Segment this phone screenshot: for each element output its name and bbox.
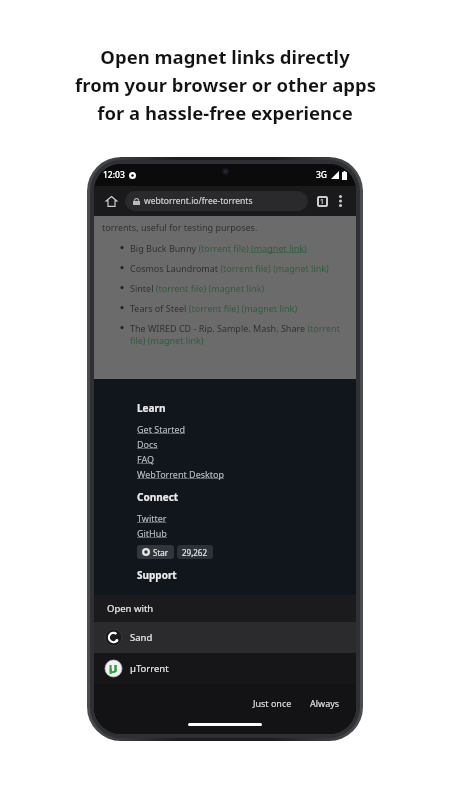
staticText: Just once bbox=[253, 697, 292, 709]
button[interactable]: Docs bbox=[137, 438, 158, 450]
staticText: webtorrent.io/free-torrents bbox=[144, 195, 253, 207]
staticText: Get Started bbox=[137, 423, 186, 435]
staticText: FAQ bbox=[137, 453, 155, 465]
button[interactable]: WebTorrent Desktop bbox=[137, 468, 225, 480]
button[interactable]: More options bbox=[331, 192, 349, 210]
button[interactable]: Get Started bbox=[137, 423, 186, 435]
staticText: for a hassle-free experience bbox=[97, 100, 353, 125]
button[interactable]: GitHub bbox=[137, 527, 167, 539]
button[interactable]: Twitter bbox=[137, 512, 167, 524]
staticText: 3G bbox=[316, 169, 328, 181]
button[interactable]: webtorrent.io/free-torrents bbox=[125, 191, 308, 211]
button[interactable]: FAQ bbox=[137, 453, 155, 465]
staticText: torrents, useful for testing purposes. bbox=[102, 221, 258, 233]
staticText: Tears of Steel (torrent file) (magnet li… bbox=[130, 302, 350, 314]
staticText: Support bbox=[137, 568, 177, 582]
staticText: 1 bbox=[320, 197, 325, 207]
button[interactable]: Tabs bbox=[313, 192, 331, 210]
staticText: 12:03 bbox=[103, 169, 125, 181]
staticText: Open with bbox=[107, 602, 154, 615]
button[interactable]: µTorrent bbox=[94, 653, 356, 684]
staticText: Cosmos Laundromat (torrent file) (magnet… bbox=[130, 262, 350, 274]
staticText: from your browser or other apps bbox=[75, 72, 376, 97]
staticText: GitHub bbox=[137, 527, 167, 539]
button[interactable]: Always bbox=[304, 694, 346, 712]
button[interactable]: 29,262 bbox=[177, 545, 213, 559]
button[interactable]: Star bbox=[137, 545, 174, 559]
staticText: The WIRED CD - Rip. Sample. Mash. Share … bbox=[130, 322, 350, 346]
staticText: WebTorrent Desktop bbox=[137, 468, 225, 480]
staticText: 29,262 bbox=[182, 547, 208, 558]
staticText: Big Buck Bunny (torrent file) (magnet li… bbox=[130, 242, 350, 254]
staticText: µTorrent bbox=[130, 662, 169, 675]
staticText: Learn bbox=[137, 401, 166, 415]
staticText: Sand bbox=[130, 631, 153, 644]
button[interactable]: Sand bbox=[94, 622, 356, 653]
staticText: Connect bbox=[137, 490, 179, 504]
staticText: Always bbox=[310, 697, 340, 709]
staticText: Docs bbox=[137, 438, 158, 450]
staticText: Sintel (torrent file) (magnet link) bbox=[130, 282, 350, 294]
staticText: Twitter bbox=[137, 512, 167, 524]
staticText: Star bbox=[153, 547, 169, 558]
staticText: Open magnet links directly bbox=[100, 44, 350, 69]
button[interactable]: Home bbox=[101, 191, 121, 211]
button[interactable]: Just once bbox=[247, 694, 298, 712]
